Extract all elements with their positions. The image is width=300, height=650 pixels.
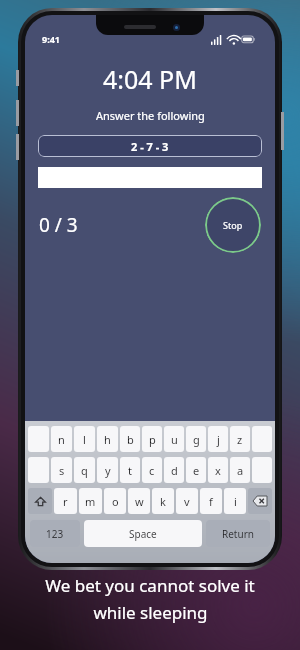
button[interactable]: n [51,426,72,452]
staticText: m [85,494,96,509]
button[interactable]: 2 - 7 - 3 [38,135,262,157]
button[interactable]: Stop [205,197,261,253]
button[interactable]: p [142,426,162,452]
button[interactable]: y [97,457,118,483]
staticText: 0 / 3 [39,212,78,238]
staticText: j [217,432,220,447]
button[interactable]: d [164,457,184,483]
staticText: f [209,494,213,509]
button[interactable]: t [120,457,140,483]
staticText: 4:04 PM [103,62,197,96]
staticText: s [59,463,65,478]
staticText: y [105,463,111,478]
button[interactable]: k [152,488,174,514]
staticText: t [128,463,132,478]
button[interactable]: f [200,488,222,514]
staticText: h [104,432,111,447]
staticText: Stop [223,219,243,231]
button[interactable]: x [208,457,228,483]
button[interactable]: o [104,488,126,514]
staticText: o [112,494,119,509]
staticText: i [234,494,237,509]
staticText: z [237,432,243,447]
staticText: w [135,494,144,509]
staticText: q [81,463,88,478]
button[interactable]: v [176,488,198,514]
staticText: g [193,432,200,447]
staticText: while sleeping [93,601,208,624]
button[interactable] [28,457,49,483]
staticText: v [184,494,190,509]
staticText: u [171,432,178,447]
button[interactable]: a [230,457,250,483]
staticText: Answer the following [96,108,205,123]
button[interactable]: Space [84,520,202,547]
button[interactable]: e [186,457,206,483]
button[interactable]: j [208,426,228,452]
button[interactable]: s [51,457,72,483]
button[interactable]: Return [206,520,270,547]
button[interactable]: h [97,426,118,452]
button[interactable]: z [230,426,250,452]
staticText: b [127,432,134,447]
staticText: n [58,432,65,447]
staticText: Return [222,527,254,541]
staticText: r [63,494,68,509]
staticText: d [171,463,178,478]
button[interactable]: i [224,488,246,514]
staticText: l [83,432,86,447]
staticText: c [149,463,155,478]
staticText: We bet you cannot solve it [45,574,255,597]
staticText: k [160,494,166,509]
button[interactable]: Shift [28,488,52,514]
button[interactable]: c [142,457,162,483]
button[interactable]: r [54,488,77,514]
button[interactable] [28,426,49,452]
button[interactable]: l [74,426,95,452]
button[interactable]: w [128,488,150,514]
button[interactable]: b [120,426,140,452]
button[interactable]: 123 [30,520,80,547]
button[interactable]: u [164,426,184,452]
button[interactable] [252,426,272,452]
staticText: 2 - 7 - 3 [131,139,169,154]
staticText: 123 [46,527,64,541]
button[interactable]: m [79,488,102,514]
staticText: e [193,463,200,478]
staticText: x [215,463,221,478]
staticText: p [149,432,156,447]
button[interactable]: q [74,457,95,483]
button[interactable]: g [186,426,206,452]
button[interactable] [252,457,272,483]
staticText: a [237,463,244,478]
button[interactable]: Backspace [248,488,272,514]
staticText: Space [129,527,157,541]
staticText: 9:41 [42,33,60,45]
